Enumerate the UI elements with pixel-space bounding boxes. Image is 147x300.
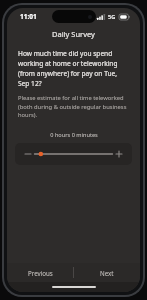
button[interactable]: Decrease [23, 147, 33, 161]
staticText: 11:01 [20, 12, 37, 21]
button[interactable]: Previous [7, 263, 73, 282]
staticText: Previous [28, 269, 53, 277]
staticText: Please estimate for all time teleworked … [18, 94, 129, 118]
staticText: 5G [108, 13, 116, 20]
staticText: How much time did you spend working at h… [18, 49, 129, 87]
staticText: Daily Survey [52, 29, 95, 39]
staticText: Next [100, 269, 114, 277]
button[interactable]: Increase [114, 147, 124, 161]
staticText: 0 hours 0 minutes [50, 131, 98, 139]
button[interactable]: Next [74, 263, 140, 282]
button[interactable] [33, 147, 114, 161]
